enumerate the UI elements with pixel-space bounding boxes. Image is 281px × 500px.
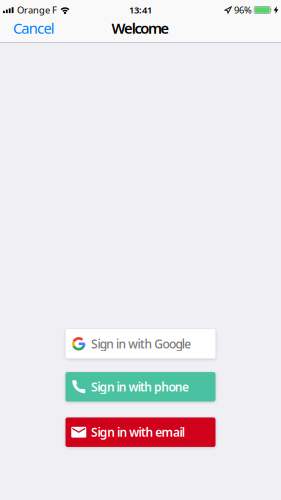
staticText: Orange F (17, 4, 57, 16)
button[interactable]: Cancel (13, 18, 55, 38)
staticText: Sign in with Google (91, 336, 191, 352)
staticText: Sign in with email (91, 424, 185, 440)
staticText: 96% (234, 4, 252, 16)
staticText: 13:41 (129, 4, 152, 16)
button[interactable]: Sign in with Google (65, 329, 215, 359)
staticText: Welcome (111, 18, 170, 38)
staticText: Cancel (13, 18, 55, 38)
staticText: Sign in with phone (91, 379, 189, 395)
button[interactable]: Sign in with email (65, 417, 215, 447)
button[interactable]: Sign in with phone (65, 372, 215, 402)
